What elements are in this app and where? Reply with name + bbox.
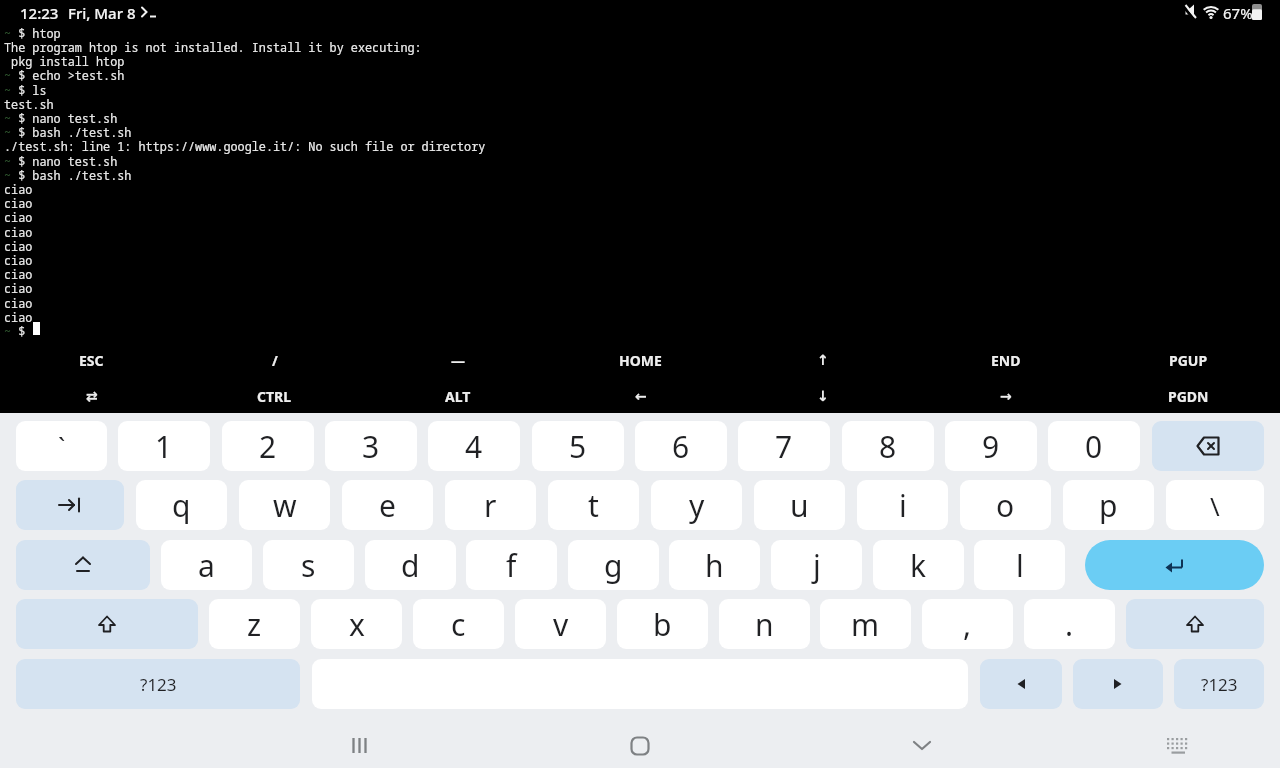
button[interactable]: x [311, 599, 402, 649]
button[interactable]: h [669, 540, 760, 590]
staticText: c [451, 604, 466, 645]
button[interactable] [16, 599, 198, 649]
button[interactable]: END [914, 342, 1097, 378]
button[interactable] [610, 715, 670, 768]
button[interactable]: e [342, 480, 433, 530]
button[interactable]: a [161, 540, 252, 590]
button[interactable]: → [914, 378, 1097, 414]
button[interactable]: 7 [738, 421, 830, 471]
button[interactable]: 6 [635, 421, 727, 471]
button[interactable]: 2 [222, 421, 314, 471]
staticText: m [851, 604, 880, 645]
button[interactable] [16, 540, 150, 590]
button[interactable]: / [183, 342, 366, 378]
button[interactable]: l [974, 540, 1065, 590]
staticText: ~ $ bash ./test.sh [4, 167, 132, 183]
button[interactable] [1146, 715, 1206, 768]
button[interactable]: HOME [549, 342, 732, 378]
staticText: ESC [79, 351, 104, 370]
button[interactable] [1126, 599, 1264, 649]
button[interactable]: f [466, 540, 557, 590]
staticText: p [1099, 485, 1118, 526]
button[interactable]: q [136, 480, 227, 530]
staticText: ./test.sh: line 1: https://www.google.it… [4, 138, 486, 154]
staticText: PGDN [1168, 387, 1209, 406]
staticText: ciao [4, 295, 33, 311]
button[interactable]: ↓ [731, 378, 914, 414]
button[interactable]: PGDN [1097, 378, 1280, 414]
button[interactable]: u [754, 480, 845, 530]
button[interactable]: d [365, 540, 456, 590]
button[interactable]: s [263, 540, 354, 590]
button[interactable] [1152, 421, 1264, 471]
staticText: ~ $ [4, 323, 33, 339]
button[interactable]: v [515, 599, 606, 649]
staticText: 3 [362, 426, 380, 467]
button[interactable]: j [771, 540, 862, 590]
button[interactable]: ALT [366, 378, 549, 414]
button[interactable]: , [922, 599, 1013, 649]
staticText: 7 [775, 426, 793, 467]
staticText: ciao [4, 209, 33, 225]
button[interactable]: y [651, 480, 742, 530]
staticText: ?123 [140, 673, 177, 696]
button[interactable]: ↑ [731, 342, 914, 378]
button[interactable]: 1 [118, 421, 210, 471]
button[interactable]: ?123 [1174, 659, 1264, 709]
button[interactable]: ← [549, 378, 732, 414]
staticText: ?123 [1201, 673, 1238, 696]
button[interactable]: o [960, 480, 1051, 530]
button[interactable] [892, 715, 952, 768]
staticText: a [198, 545, 215, 586]
staticText: w [273, 485, 297, 526]
button[interactable]: g [568, 540, 659, 590]
button[interactable]: 4 [428, 421, 520, 471]
button[interactable]: c [413, 599, 504, 649]
button[interactable]: 9 [945, 421, 1037, 471]
button[interactable]: m [820, 599, 911, 649]
button[interactable]: 8 [842, 421, 934, 471]
button[interactable]: ` [16, 421, 107, 471]
staticText: 0 [1085, 426, 1103, 467]
staticText: l [1016, 545, 1024, 586]
button[interactable] [1073, 659, 1163, 709]
staticText: 1 [155, 426, 173, 467]
button[interactable]: ⇄ [0, 378, 183, 414]
button[interactable]: b [617, 599, 708, 649]
button[interactable]: ?123 [16, 659, 300, 709]
staticText: 5 [569, 426, 587, 467]
staticText: ciao [4, 181, 33, 197]
button[interactable]: 5 [532, 421, 624, 471]
staticText: ← [635, 388, 647, 404]
button[interactable] [330, 715, 390, 768]
staticText: ~ $ htop [4, 25, 61, 41]
button[interactable]: \ [1166, 480, 1264, 530]
button[interactable]: n [719, 599, 810, 649]
staticText: \ [1210, 488, 1220, 523]
button[interactable]: t [548, 480, 639, 530]
button[interactable]: i [857, 480, 948, 530]
staticText: 4 [465, 426, 483, 467]
button[interactable]: CTRL [183, 378, 366, 414]
button[interactable]: 0 [1048, 421, 1140, 471]
button[interactable]: ESC [0, 342, 183, 378]
button[interactable]: 3 [325, 421, 417, 471]
button[interactable]: k [873, 540, 964, 590]
button[interactable] [1085, 540, 1264, 590]
button[interactable]: w [239, 480, 330, 530]
button[interactable] [16, 480, 124, 530]
staticText: ciao [4, 224, 33, 240]
staticText: b [653, 604, 672, 645]
button[interactable]: z [209, 599, 300, 649]
button[interactable]: PGUP [1097, 342, 1280, 378]
button[interactable]: . [1024, 599, 1115, 649]
button[interactable]: p [1063, 480, 1154, 530]
button[interactable]: r [445, 480, 536, 530]
button[interactable] [980, 659, 1062, 709]
button[interactable]: — [366, 342, 549, 378]
staticText: s [301, 545, 316, 586]
staticText: ciao [4, 280, 33, 296]
staticText: ~ $ echo >test.sh [4, 67, 125, 83]
staticText: The program htop is not installed. Insta… [4, 39, 422, 55]
